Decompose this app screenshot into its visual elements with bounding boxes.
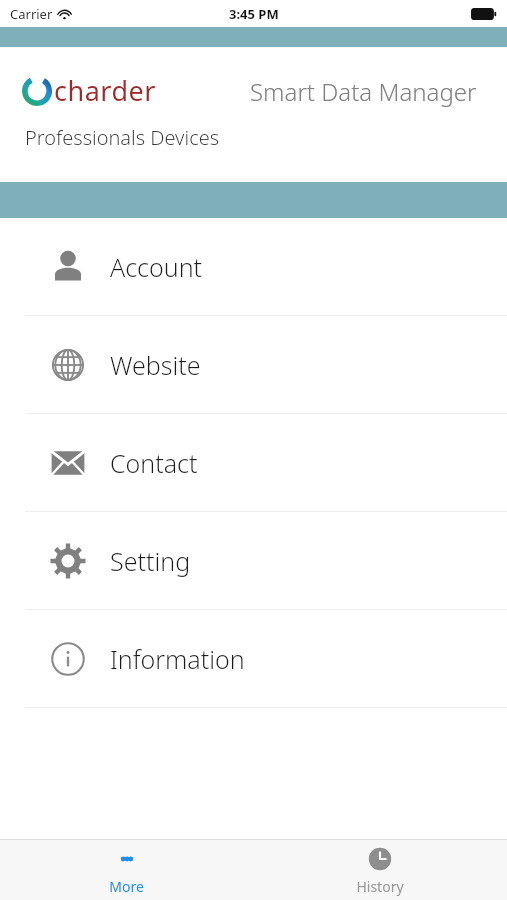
- staticText: History: [356, 877, 404, 896]
- staticText: Information: [110, 642, 245, 676]
- staticText: 3:45 PM: [229, 5, 279, 23]
- staticText: charder: [54, 72, 156, 109]
- button[interactable]: Website: [0, 316, 507, 413]
- staticText: Contact: [110, 446, 198, 480]
- button[interactable]: Information: [0, 610, 507, 707]
- button[interactable]: More: [0, 840, 253, 900]
- staticText: Carrier: [10, 5, 53, 23]
- button[interactable]: Contact: [0, 414, 507, 511]
- staticText: More: [109, 877, 144, 896]
- staticText: Smart Data Manager: [250, 75, 477, 108]
- button[interactable]: Setting: [0, 512, 507, 609]
- staticText: Account: [110, 250, 203, 284]
- button[interactable]: History: [253, 840, 507, 900]
- staticText: Professionals Devices: [25, 124, 220, 151]
- staticText: Setting: [110, 544, 191, 578]
- button[interactable]: Account: [0, 218, 507, 315]
- staticText: Website: [110, 348, 201, 382]
